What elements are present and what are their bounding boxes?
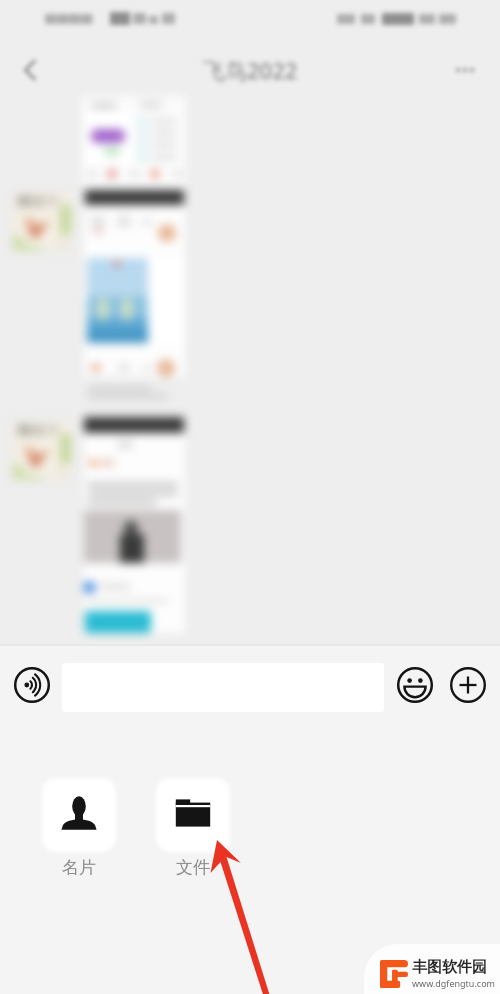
staticText: www.dgfengtu.com [412, 977, 496, 989]
button[interactable]: 名片 [42, 778, 116, 878]
staticText: 飞鸟2022 [203, 55, 298, 85]
staticText: 名片 [62, 857, 96, 878]
staticText: 文件 [176, 857, 210, 878]
button[interactable]: Emoji [397, 667, 433, 703]
button[interactable]: Back [12, 52, 48, 88]
button[interactable]: More [447, 52, 483, 88]
button[interactable]: Voice message [14, 667, 50, 703]
button[interactable]: More options [450, 667, 486, 703]
button[interactable]: 文件 [156, 778, 230, 878]
staticText: 丰图软件园 [412, 958, 487, 977]
